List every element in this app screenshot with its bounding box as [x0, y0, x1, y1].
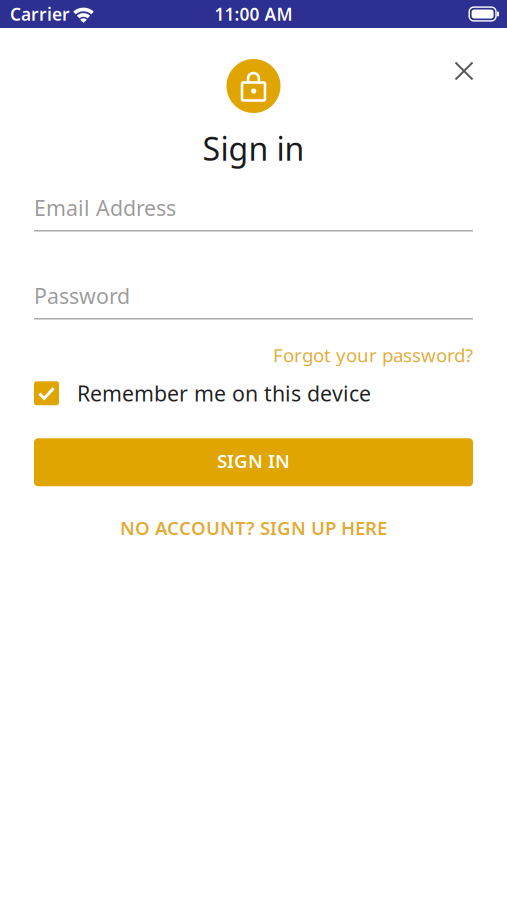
button[interactable]: Close — [444, 51, 484, 91]
button[interactable]: NO ACCOUNT? SIGN UP HERE — [34, 506, 473, 549]
button[interactable]: Password — [34, 281, 473, 319]
staticText: Password — [34, 281, 130, 310]
staticText: Remember me on this device — [77, 379, 371, 407]
staticText: Carrier — [10, 2, 70, 25]
button[interactable]: SIGN IN — [34, 438, 473, 486]
button[interactable]: Forgot your password? — [34, 336, 473, 373]
staticText: Email Address — [34, 193, 176, 222]
staticText: Forgot your password? — [273, 342, 473, 367]
staticText: 11:00 AM — [214, 2, 292, 25]
button[interactable]: Remember me on this device — [34, 381, 473, 405]
staticText: Sign in — [202, 127, 304, 169]
staticText: NO ACCOUNT? SIGN UP HERE — [120, 515, 387, 540]
staticText: SIGN IN — [217, 448, 290, 473]
button[interactable]: Email Address — [34, 193, 473, 231]
